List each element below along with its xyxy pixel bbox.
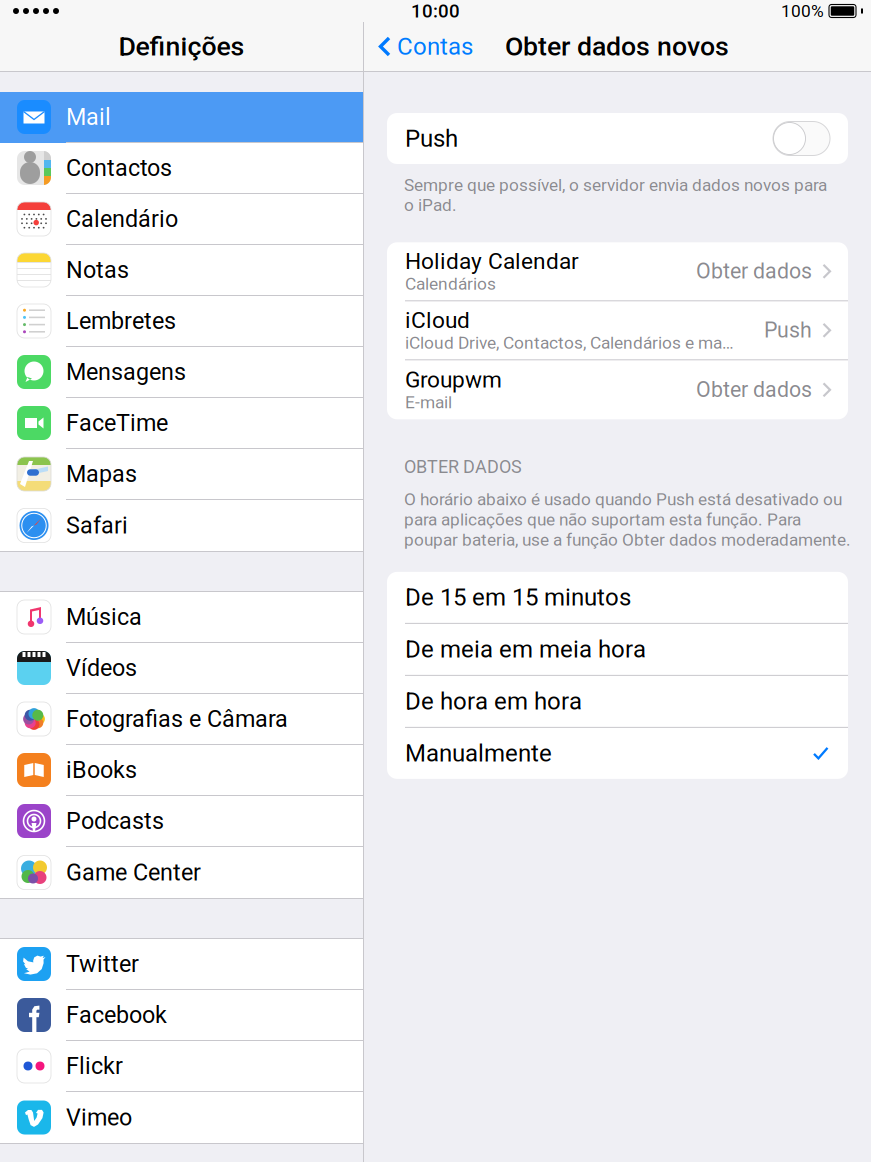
staticText: Vimeo <box>66 1104 132 1131</box>
button[interactable]: Calendário <box>0 194 363 245</box>
button[interactable]: Vimeo <box>0 1092 363 1143</box>
staticText: Calendários <box>405 274 496 294</box>
button[interactable]: Notas <box>0 245 363 296</box>
staticText: Game Center <box>66 859 201 886</box>
staticText: OBTER DADOS <box>404 456 522 477</box>
button[interactable]: Game Center <box>0 847 363 898</box>
button[interactable]: Manualmente <box>387 728 848 779</box>
button[interactable]: Holiday Calendar <box>387 242 848 301</box>
button[interactable]: Twitter <box>0 939 363 990</box>
staticText: Mail <box>66 103 111 131</box>
staticText: E-mail <box>405 392 452 412</box>
button[interactable]: Lembretes <box>0 296 363 347</box>
staticText: Holiday Calendar <box>405 248 579 275</box>
staticText: O horário abaixo é usado quando Push est… <box>404 489 851 550</box>
button[interactable]: Podcasts <box>0 796 363 847</box>
staticText: Calendário <box>66 205 178 233</box>
button[interactable]: Música <box>0 592 363 643</box>
staticText: iCloud <box>405 307 470 334</box>
staticText: Obter dados <box>696 377 812 402</box>
staticText: Push <box>405 124 458 152</box>
staticText: Definições <box>118 31 244 62</box>
button[interactable]: Contactos <box>0 143 363 194</box>
staticText: Fotografias e Câmara <box>66 705 288 733</box>
staticText: De meia em meia hora <box>405 635 646 663</box>
staticText: Notas <box>66 256 129 284</box>
button[interactable]: Flickr <box>0 1041 363 1092</box>
staticText: Vídeos <box>66 654 137 682</box>
staticText: FaceTime <box>66 409 168 437</box>
staticText: Twitter <box>66 950 139 978</box>
staticText: iCloud Drive, Contactos, Calendários e m… <box>405 333 735 353</box>
staticText: De 15 em 15 minutos <box>405 583 631 611</box>
staticText: Lembretes <box>66 307 176 335</box>
staticText: Sempre que possível, o servidor envia da… <box>404 175 827 215</box>
staticText: Música <box>66 603 142 631</box>
staticText: Obter dados <box>696 259 812 284</box>
button[interactable]: Facebook <box>0 990 363 1041</box>
staticText: Groupwm <box>405 366 502 393</box>
staticText: 10:00 <box>411 0 460 22</box>
button[interactable]: De meia em meia hora <box>387 624 848 676</box>
button[interactable]: FaceTime <box>0 398 363 449</box>
button[interactable]: De hora em hora <box>387 676 848 728</box>
button[interactable]: Mail <box>0 92 363 143</box>
staticText: Push <box>764 318 812 343</box>
button[interactable]: iBooks <box>0 745 363 796</box>
staticText: Facebook <box>66 1001 167 1029</box>
staticText: Manualmente <box>405 739 552 767</box>
staticText: Flickr <box>66 1052 123 1080</box>
button[interactable]: Mapas <box>0 449 363 500</box>
staticText: Mensagens <box>66 358 186 386</box>
button[interactable]: iCloud <box>387 301 848 360</box>
staticText: 100% <box>781 1 824 21</box>
staticText: Contas <box>397 32 473 60</box>
staticText: Contactos <box>66 154 172 182</box>
staticText: De hora em hora <box>405 687 582 715</box>
button[interactable]: Fotografias e Câmara <box>0 694 363 745</box>
staticText: Mapas <box>66 460 137 488</box>
button[interactable]: Vídeos <box>0 643 363 694</box>
staticText: iBooks <box>66 756 137 784</box>
button[interactable]: Mensagens <box>0 347 363 398</box>
staticText: Podcasts <box>66 807 164 835</box>
button[interactable]: Safari <box>0 500 363 551</box>
button[interactable]: Groupwm <box>387 360 848 419</box>
button[interactable]: De 15 em 15 minutos <box>387 572 848 624</box>
staticText: Safari <box>66 512 128 539</box>
staticText: Obter dados novos <box>505 31 729 62</box>
button[interactable]: Contas <box>364 32 473 60</box>
